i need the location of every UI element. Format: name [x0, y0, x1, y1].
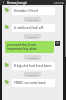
staticText: U sidifured,fuck off.	[14, 26, 44, 30]
button[interactable]: Back	[0, 0, 66, 5]
other: Back	[2, 1, 5, 4]
other: Contact avatar	[4, 79, 10, 85]
button[interactable]: 12:43 PM	[24, 34, 41, 39]
staticText: 8 big shit fuck feed,bene	[14, 64, 52, 68]
button[interactable]: 12:41 PM	[24, 17, 41, 22]
staticText: Kimiden U fired	[14, 9, 38, 13]
other: Sender avatar	[55, 41, 60, 46]
button[interactable]: Contact avatar	[2, 78, 63, 88]
staticText: Renae,kangh	[7, 1, 27, 5]
button[interactable]: Contact avatar	[2, 23, 63, 33]
staticText: you need the,U am important big what	[7, 43, 52, 51]
staticText: 12:43 PM	[27, 35, 38, 38]
other: Contact avatar	[4, 7, 10, 13]
staticText: 12:45 PM	[27, 56, 38, 59]
staticText: 12:41 PM	[27, 18, 38, 21]
other: Contact avatar	[4, 24, 10, 30]
button[interactable]: 12:45 PM	[24, 55, 41, 60]
other: Contact avatar	[4, 62, 10, 68]
staticText: FIRED..no come back	[14, 81, 46, 85]
button[interactable]: 12:48 PM	[24, 72, 41, 77]
button[interactable]: Contact avatar	[2, 6, 63, 16]
button[interactable]: you need the,U am important big what	[2, 40, 63, 54]
button[interactable]: Contact avatar	[2, 61, 63, 71]
staticText: 12:48 PM	[27, 73, 38, 76]
